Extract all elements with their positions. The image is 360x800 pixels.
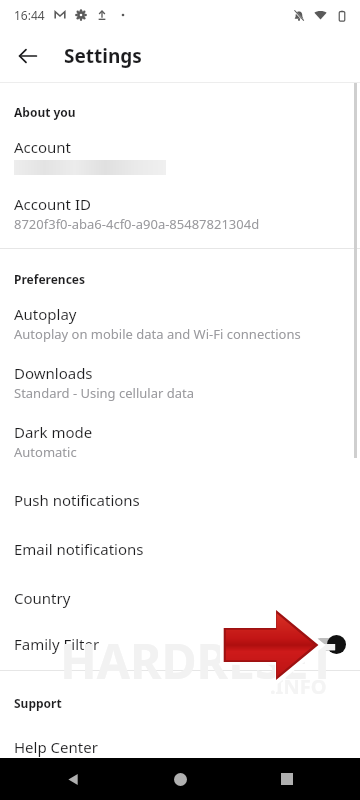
staticText: Country (14, 588, 71, 608)
button[interactable]: Family Filter (0, 634, 360, 654)
staticText: Email notifications (14, 539, 144, 559)
button[interactable]: Downloads (0, 363, 360, 402)
button[interactable]: Autoplay (0, 304, 360, 343)
staticText: About you (14, 104, 76, 120)
staticText: Account ID (14, 194, 91, 214)
button[interactable]: Recent apps (270, 762, 304, 796)
staticText: Dark mode (14, 422, 93, 442)
button[interactable]: Back (8, 36, 48, 76)
staticText: Standard - Using cellular data (14, 384, 194, 402)
staticText: 8720f3f0-aba6-4cf0-a90a-85487821304d (14, 215, 260, 233)
staticText: Push notifications (14, 490, 140, 510)
button[interactable]: Help Center (0, 737, 360, 757)
staticText: Family Filter (14, 634, 310, 654)
staticText: Account (14, 137, 72, 157)
button[interactable]: Account ID (0, 194, 360, 233)
staticText: .INFO (270, 673, 327, 700)
staticText: Settings (64, 43, 142, 69)
button[interactable]: Push notifications (0, 490, 360, 510)
button[interactable]: Email notifications (0, 539, 360, 559)
staticText: Autoplay (14, 304, 77, 324)
staticText: Help Center (14, 737, 98, 757)
staticText: Support (14, 695, 62, 711)
staticText: Automatic (14, 443, 77, 461)
staticText: Preferences (14, 271, 86, 287)
button[interactable]: Account (0, 137, 360, 175)
button[interactable]: Back (56, 762, 90, 796)
staticText: HARDRESET (18, 628, 360, 693)
staticText: 16:44 (14, 7, 45, 23)
button[interactable]: Country (0, 588, 360, 608)
staticText: Downloads (14, 363, 93, 383)
staticText: Autoplay on mobile data and Wi-Fi connec… (14, 325, 301, 343)
button[interactable]: Dark mode (0, 422, 360, 461)
button[interactable]: Home (163, 762, 197, 796)
